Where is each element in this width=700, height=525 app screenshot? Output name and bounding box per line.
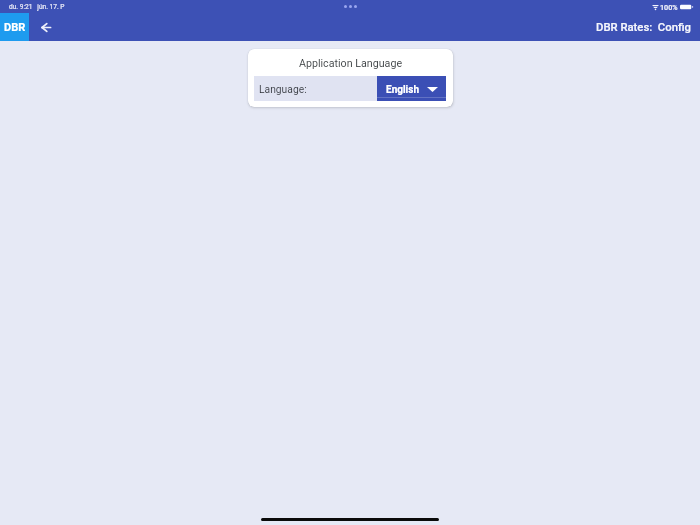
staticText: Application Language (248, 57, 453, 70)
staticText: 100% (660, 3, 678, 11)
staticText: Language: (259, 83, 307, 95)
button[interactable]: English (377, 76, 446, 101)
staticText: English (386, 84, 419, 96)
staticText: DBR Rates: Config (596, 21, 691, 34)
button[interactable]: DBR (0, 13, 29, 41)
button[interactable]: Back (29, 13, 63, 41)
staticText: du. 9:21 jún. 17. P (9, 3, 65, 11)
staticText: DBR (4, 21, 26, 34)
